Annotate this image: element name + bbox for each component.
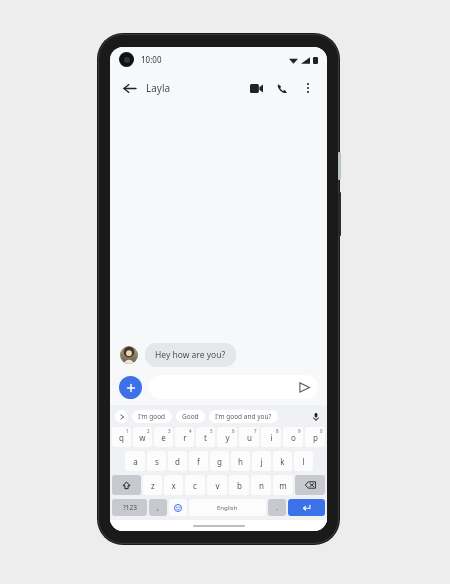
staticText: 3 bbox=[168, 428, 171, 434]
staticText: d bbox=[175, 456, 180, 467]
button[interactable]: . bbox=[268, 499, 286, 516]
staticText: g bbox=[217, 456, 222, 467]
button[interactable]: o bbox=[283, 427, 303, 447]
staticText: e bbox=[161, 432, 166, 443]
button[interactable]: Call bbox=[271, 77, 293, 99]
button[interactable]: q bbox=[112, 427, 131, 447]
staticText: c bbox=[193, 480, 197, 491]
button[interactable]: i bbox=[261, 427, 281, 447]
staticText: 0 bbox=[320, 428, 323, 434]
staticText: . bbox=[276, 503, 278, 513]
button[interactable]: Backspace bbox=[295, 475, 325, 495]
staticText: t bbox=[204, 432, 207, 443]
staticText: 4 bbox=[189, 428, 192, 434]
staticText: n bbox=[259, 480, 264, 491]
staticText: u bbox=[247, 432, 252, 443]
button[interactable]: Video call bbox=[245, 77, 267, 99]
staticText: p bbox=[313, 432, 318, 443]
button[interactable]: Enter bbox=[288, 499, 325, 516]
button[interactable]: e bbox=[154, 427, 173, 447]
button[interactable]: u bbox=[239, 427, 259, 447]
staticText: v bbox=[215, 480, 220, 491]
button[interactable]: Good bbox=[176, 410, 205, 423]
staticText: English bbox=[217, 504, 238, 512]
button[interactable]: r bbox=[175, 427, 194, 447]
button[interactable]: z bbox=[143, 475, 162, 495]
button[interactable]: Shift bbox=[112, 475, 141, 495]
staticText: s bbox=[155, 456, 159, 467]
staticText: 10:00 bbox=[141, 54, 162, 65]
button[interactable]: Send bbox=[149, 375, 318, 399]
staticText: I'm good bbox=[138, 412, 166, 421]
staticText: j bbox=[260, 456, 263, 467]
staticText: Good bbox=[182, 412, 199, 421]
button[interactable]: Hey how are you? bbox=[145, 343, 236, 367]
button[interactable]: v bbox=[207, 475, 227, 495]
button[interactable]: s bbox=[147, 451, 166, 471]
button[interactable]: l bbox=[294, 451, 313, 471]
button[interactable]: w bbox=[133, 427, 152, 447]
staticText: a bbox=[133, 456, 138, 467]
staticText: 9 bbox=[298, 428, 301, 434]
staticText: f bbox=[197, 456, 200, 467]
staticText: 5 bbox=[210, 428, 213, 434]
staticText: 6 bbox=[232, 428, 235, 434]
button[interactable]: b bbox=[229, 475, 249, 495]
staticText: k bbox=[280, 456, 285, 467]
staticText: l bbox=[302, 456, 305, 467]
button[interactable]: j bbox=[252, 451, 271, 471]
staticText: I'm good and you? bbox=[215, 412, 272, 421]
staticText: b bbox=[237, 480, 242, 491]
staticText: 1 bbox=[126, 428, 129, 434]
button[interactable]: g bbox=[210, 451, 229, 471]
button[interactable]: I'm good and you? bbox=[209, 410, 278, 423]
button[interactable]: Expand suggestions bbox=[115, 410, 128, 423]
button[interactable]: t bbox=[196, 427, 215, 447]
staticText: Layla bbox=[146, 81, 171, 95]
button[interactable]: a bbox=[125, 451, 145, 471]
button[interactable]: n bbox=[251, 475, 271, 495]
staticText: 7 bbox=[254, 428, 257, 434]
staticText: 2 bbox=[147, 428, 150, 434]
staticText: w bbox=[139, 432, 146, 443]
button[interactable]: ?123 bbox=[112, 499, 147, 516]
button[interactable]: k bbox=[273, 451, 292, 471]
button[interactable]: m bbox=[273, 475, 293, 495]
staticText: z bbox=[151, 480, 155, 491]
button[interactable]: English bbox=[189, 499, 266, 516]
staticText: 8 bbox=[276, 428, 279, 434]
staticText: m bbox=[279, 480, 287, 491]
button[interactable]: Emoji bbox=[169, 499, 187, 516]
staticText: y bbox=[225, 432, 230, 443]
button[interactable]: Add attachment bbox=[119, 376, 142, 399]
other: Backspace bbox=[305, 481, 316, 489]
button[interactable]: f bbox=[189, 451, 208, 471]
staticText: i bbox=[270, 432, 273, 443]
staticText: h bbox=[238, 456, 243, 467]
staticText: o bbox=[291, 432, 296, 443]
button[interactable]: , bbox=[149, 499, 167, 516]
staticText: , bbox=[157, 503, 159, 513]
staticText: q bbox=[119, 432, 124, 443]
button[interactable]: p bbox=[305, 427, 325, 447]
other: Shift bbox=[122, 481, 131, 490]
button[interactable]: Voice input bbox=[309, 410, 322, 423]
staticText: r bbox=[183, 432, 187, 443]
staticText: ?123 bbox=[123, 503, 137, 512]
button[interactable]: y bbox=[217, 427, 237, 447]
button[interactable]: More options bbox=[297, 77, 319, 99]
button[interactable]: I'm good bbox=[132, 410, 172, 423]
button[interactable]: x bbox=[164, 475, 183, 495]
staticText: Hey how are you? bbox=[155, 349, 226, 361]
button[interactable]: h bbox=[231, 451, 250, 471]
button[interactable]: c bbox=[185, 475, 205, 495]
staticText: x bbox=[171, 480, 176, 491]
button[interactable]: Send bbox=[294, 377, 314, 397]
button[interactable]: d bbox=[168, 451, 187, 471]
button[interactable]: Back bbox=[118, 77, 140, 99]
